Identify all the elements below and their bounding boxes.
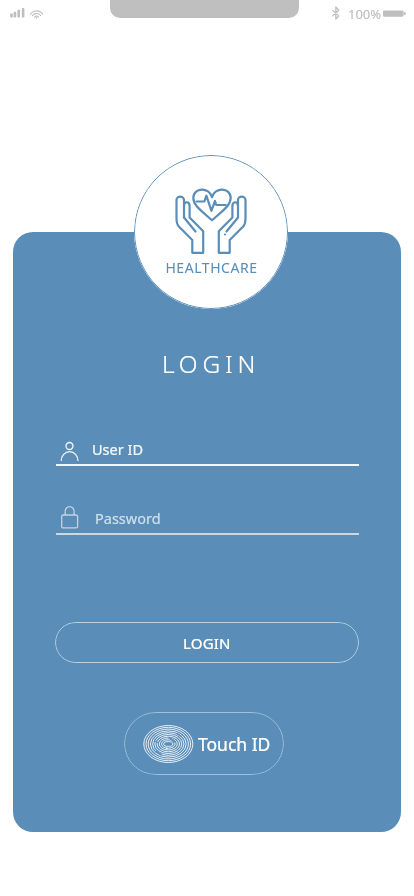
staticText: User ID: [92, 439, 143, 459]
button[interactable]: Touch ID: [124, 712, 284, 775]
button[interactable]: User ID: [56, 431, 359, 466]
staticText: Password: [95, 508, 161, 528]
button[interactable]: LOGIN: [55, 622, 359, 663]
staticText: 100%: [348, 5, 382, 23]
staticText: LOGIN: [4, 347, 414, 380]
button[interactable]: Password: [56, 500, 359, 535]
staticText: HEALTHCARE: [165, 258, 258, 277]
staticText: LOGIN: [183, 633, 231, 653]
staticText: Touch ID: [198, 732, 271, 756]
